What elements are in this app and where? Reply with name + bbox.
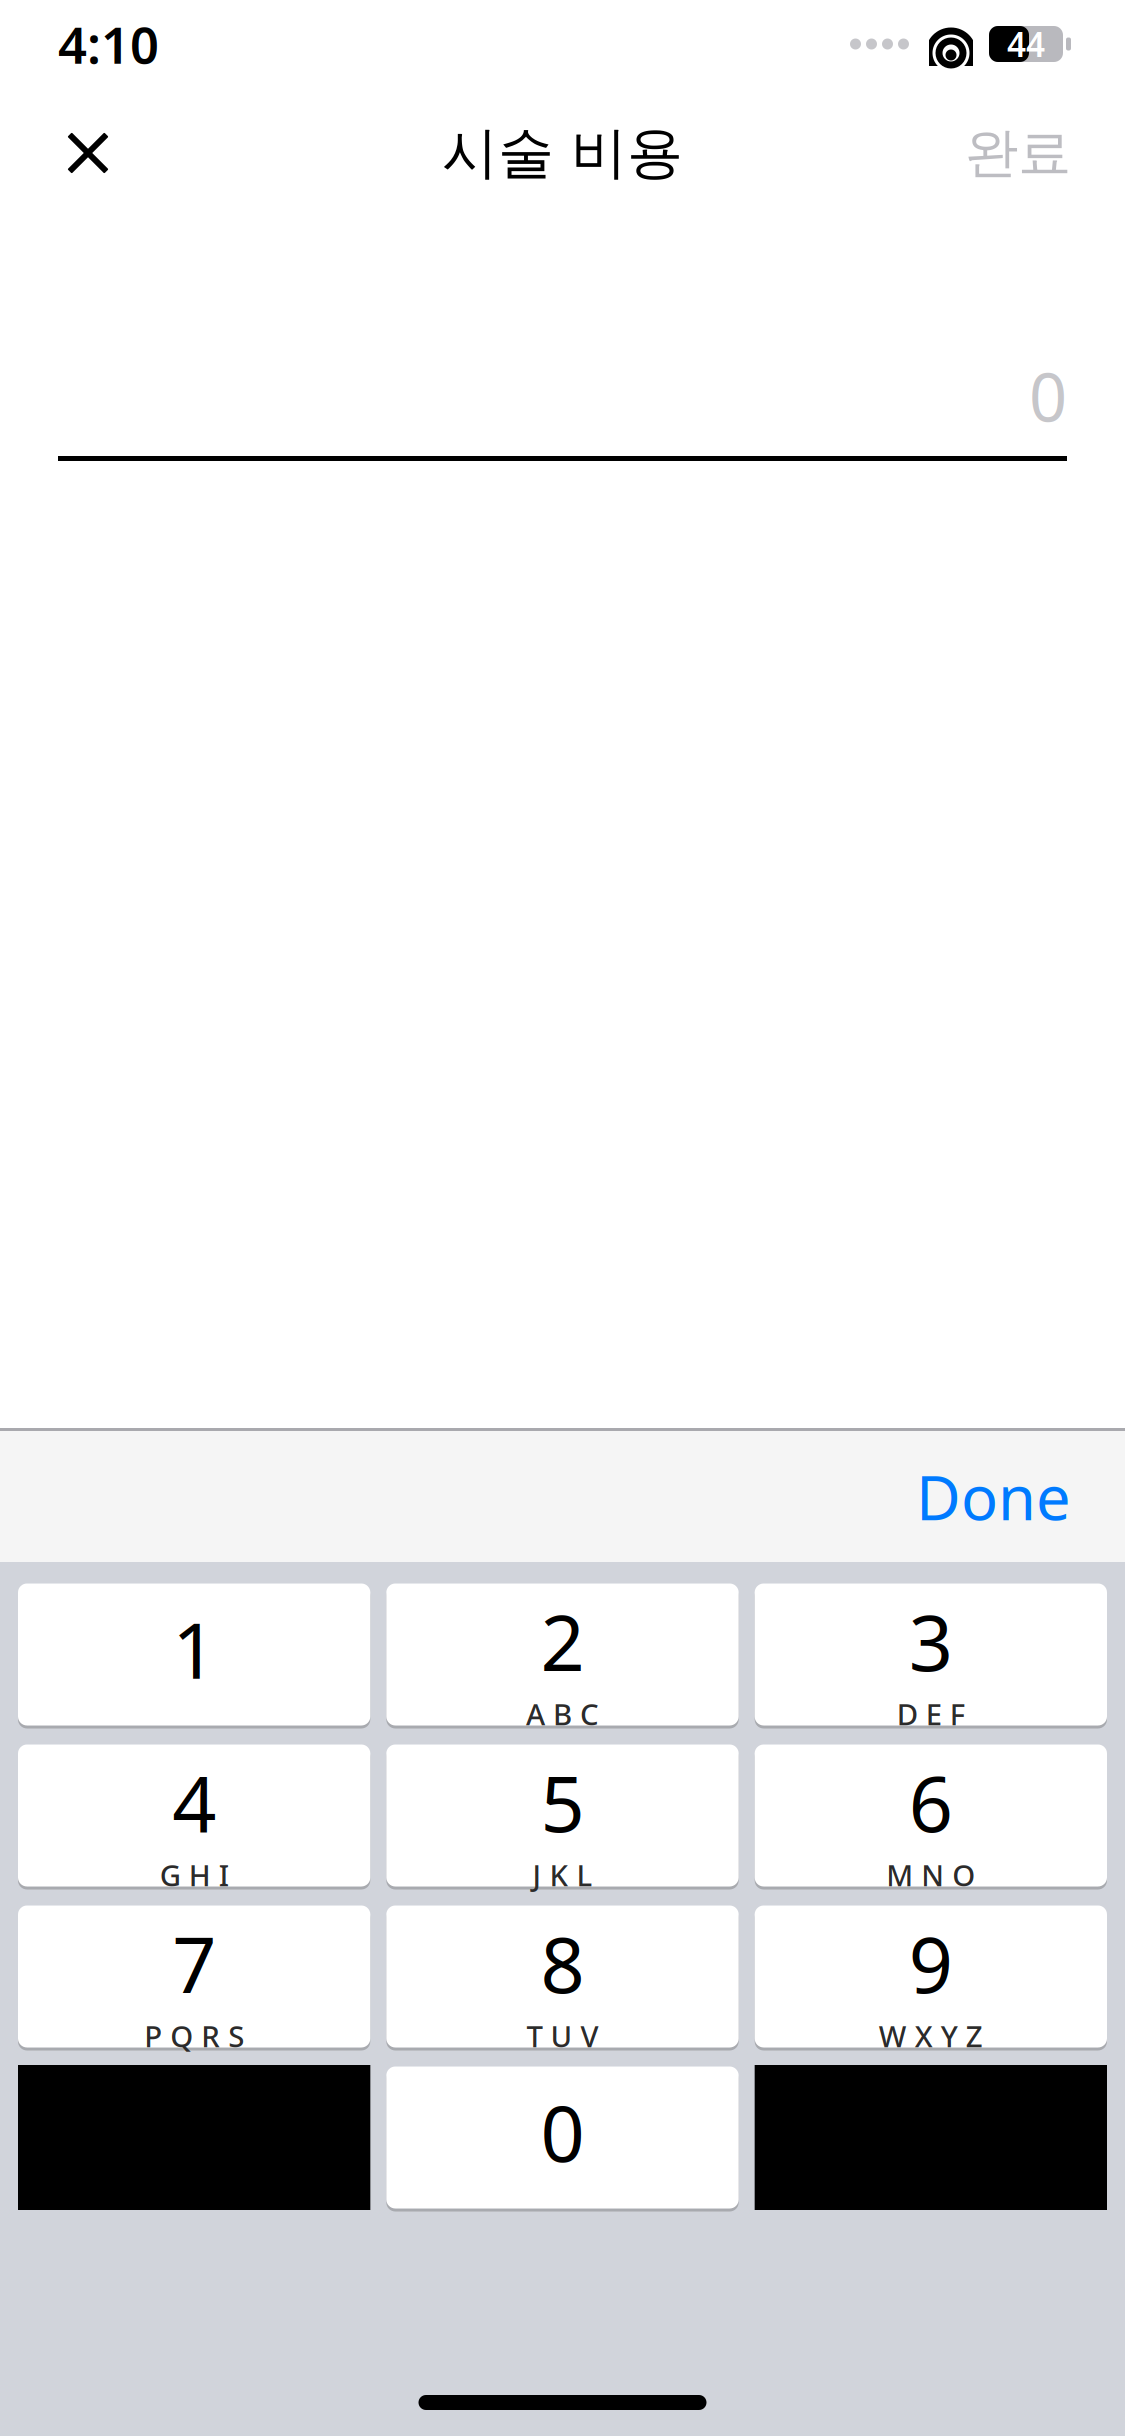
button[interactable]: Done <box>894 1442 1093 1551</box>
button[interactable]: 4 <box>18 1743 370 1888</box>
staticText: Done <box>916 1456 1071 1537</box>
button[interactable]: 0 <box>386 2065 739 2210</box>
button[interactable]: Close <box>40 105 136 201</box>
staticText: 44 <box>1007 22 1045 66</box>
staticText: T U V <box>526 2016 598 2055</box>
staticText: P Q R S <box>144 2016 244 2055</box>
staticText: A B C <box>526 1694 599 1733</box>
staticText: 4:10 <box>58 10 159 78</box>
button[interactable]: 6 <box>755 1743 1107 1888</box>
staticText: 8 <box>540 1912 584 2014</box>
button[interactable]: 9 <box>755 1904 1107 2049</box>
staticText: J K L <box>532 1855 592 1894</box>
staticText: 9 <box>909 1912 953 2014</box>
staticText: 3 <box>909 1590 953 1692</box>
staticText: 0 <box>1029 352 1067 440</box>
staticText: 완료 <box>965 120 1071 186</box>
staticText: D E F <box>897 1694 965 1733</box>
button[interactable]: 8 <box>386 1904 739 2049</box>
staticText: 0 <box>540 2080 584 2183</box>
staticText: 4 <box>172 1751 216 1853</box>
staticText: 5 <box>540 1751 584 1853</box>
staticText: W X Y Z <box>879 2016 983 2055</box>
button[interactable]: 완료 <box>949 105 1087 201</box>
staticText: 1 <box>172 1597 216 1700</box>
button[interactable]: 3 <box>755 1582 1107 1727</box>
button[interactable]: 1 <box>18 1582 370 1727</box>
staticText: 시술 비용 <box>442 119 683 187</box>
staticText: G H I <box>160 1855 229 1894</box>
button[interactable]: 5 <box>386 1743 739 1888</box>
staticText: 6 <box>909 1751 953 1853</box>
staticText: M N O <box>886 1855 975 1894</box>
staticText: 7 <box>172 1912 216 2014</box>
button[interactable]: 7 <box>18 1904 370 2049</box>
staticText: 2 <box>540 1590 584 1692</box>
button[interactable]: 2 <box>386 1582 739 1727</box>
